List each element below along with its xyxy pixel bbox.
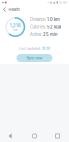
button[interactable]: Recents: [53, 131, 62, 140]
staticText: Calories:: [30, 24, 46, 29]
staticText: 25 min: [43, 32, 57, 37]
staticText: Distance:: [30, 17, 46, 22]
staticText: Sync now: [26, 56, 42, 60]
staticText: 52 kcal: [47, 24, 61, 29]
button[interactable]: Back: [0, 5, 8, 14]
button[interactable]: Sync now: [16, 54, 52, 62]
staticText: 1.0 km: [47, 17, 60, 22]
staticText: 1,218: [10, 23, 21, 28]
staticText: steps: [13, 28, 18, 31]
staticText: 12:45: [59, 1, 67, 4]
staticText: Health: [8, 7, 19, 12]
button[interactable]: Home: [30, 131, 39, 140]
staticText: Active:: [30, 32, 42, 37]
staticText: 10:30: [42, 47, 50, 50]
staticText: Last updated:: [19, 47, 41, 50]
button[interactable]: Back: [7, 131, 16, 140]
